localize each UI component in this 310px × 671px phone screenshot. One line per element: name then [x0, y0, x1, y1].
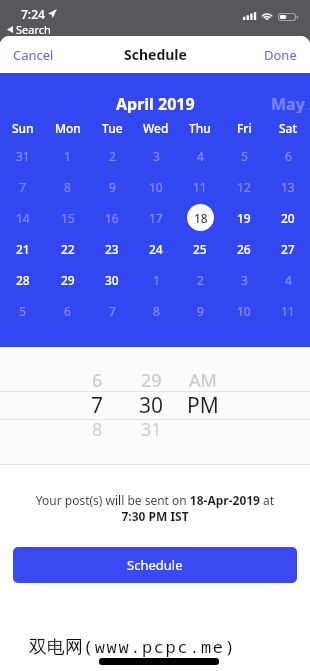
button[interactable]: 29 [124, 368, 178, 392]
staticText: 18 [194, 210, 208, 226]
staticText: 11 [281, 303, 295, 319]
button[interactable]: 31 [124, 417, 178, 441]
staticText: 25 [193, 241, 207, 257]
button[interactable]: 25 [178, 233, 222, 264]
button[interactable]: Cancel [0, 36, 66, 73]
staticText: 31 [141, 417, 162, 441]
button[interactable]: 7 [90, 295, 134, 326]
staticText: Mon [55, 120, 81, 136]
button[interactable]: AM [176, 368, 230, 392]
staticText: Tue [102, 120, 123, 136]
button[interactable]: 6 [266, 140, 310, 171]
button[interactable]: 13 [266, 171, 310, 202]
button[interactable]: Done [252, 36, 310, 73]
staticText: 8 [64, 179, 71, 195]
button[interactable]: 6 [70, 368, 124, 392]
staticText: 19 [237, 210, 251, 226]
button[interactable]: 12 [222, 171, 266, 202]
button[interactable]: 18 [178, 202, 222, 233]
staticText: 28 [16, 272, 30, 288]
staticText: 22 [61, 241, 75, 257]
button[interactable]: 7 [0, 171, 45, 202]
button[interactable]: 2 [178, 264, 222, 295]
button[interactable]: 10 [134, 171, 178, 202]
button[interactable]: 21 [0, 233, 45, 264]
button[interactable]: 30 [90, 264, 134, 295]
button[interactable]: 3 [222, 264, 266, 295]
button[interactable]: 5 [222, 140, 266, 171]
staticText: Your post(s) will be sent on 18-Apr-2019… [0, 492, 310, 524]
button[interactable] [176, 417, 230, 441]
button[interactable]: 9 [90, 171, 134, 202]
button[interactable]: 28 [0, 264, 45, 295]
staticText: 8 [153, 303, 160, 319]
button[interactable]: 1 [134, 264, 178, 295]
staticText: 30 [139, 391, 164, 415]
button[interactable]: 20 [266, 202, 310, 233]
button[interactable]: 26 [222, 233, 266, 264]
staticText: 23 [105, 241, 119, 257]
button[interactable]: 6 [45, 295, 90, 326]
staticText: 4 [285, 272, 292, 288]
staticText: 20 [281, 210, 295, 226]
staticText: 17 [149, 210, 163, 226]
button[interactable]: 4 [266, 264, 310, 295]
staticText: 5 [241, 148, 248, 164]
staticText: Fri [237, 120, 252, 136]
button[interactable]: 9 [178, 295, 222, 326]
button[interactable]: Schedule [13, 547, 297, 583]
button[interactable]: 1 [45, 140, 90, 171]
button[interactable]: 19 [222, 202, 266, 233]
staticText: Done [264, 46, 297, 64]
staticText: Schedule [127, 556, 183, 574]
staticText: 11 [193, 179, 207, 195]
button[interactable]: 30 [124, 391, 178, 415]
button[interactable]: 29 [45, 264, 90, 295]
staticText: 双电网 [29, 636, 83, 659]
staticText: 6 [285, 148, 292, 164]
button[interactable]: 8 [45, 171, 90, 202]
staticText: 8 [92, 417, 103, 441]
staticText: Search [16, 22, 51, 36]
button[interactable]: 27 [266, 233, 310, 264]
staticText: 27 [281, 241, 295, 257]
button[interactable]: 2 [90, 140, 134, 171]
button[interactable]: 8 [134, 295, 178, 326]
staticText: 7:24 [21, 6, 45, 22]
button[interactable]: 5 [0, 295, 45, 326]
staticText: 13 [281, 179, 295, 195]
button[interactable]: 3 [134, 140, 178, 171]
button[interactable]: 24 [134, 233, 178, 264]
staticText: 29 [141, 368, 162, 392]
button[interactable]: 31 [0, 140, 45, 171]
staticText: 12 [237, 179, 251, 195]
staticText: Sun [12, 120, 34, 136]
button[interactable]: 17 [134, 202, 178, 233]
button[interactable]: 14 [0, 202, 45, 233]
button[interactable]: 15 [45, 202, 90, 233]
staticText: 21 [16, 241, 30, 257]
staticText: Wed [143, 120, 169, 136]
staticText: 5 [19, 303, 26, 319]
staticText: Thu [189, 120, 211, 136]
button[interactable]: 22 [45, 233, 90, 264]
button[interactable]: 11 [178, 171, 222, 202]
staticText: 7 [19, 179, 26, 195]
staticText: 7 [109, 303, 116, 319]
button[interactable]: 8 [70, 417, 124, 441]
button[interactable]: 11 [266, 295, 310, 326]
staticText: 16 [105, 210, 119, 226]
staticText: Schedule [124, 45, 187, 64]
staticText: PM [187, 391, 219, 415]
button[interactable]: PM [176, 391, 230, 415]
staticText: 24 [149, 241, 163, 257]
staticText: 10 [237, 303, 251, 319]
button[interactable]: 10 [222, 295, 266, 326]
button[interactable]: 7 [70, 391, 124, 415]
button[interactable]: 23 [90, 233, 134, 264]
button[interactable]: 16 [90, 202, 134, 233]
staticText: 7 [91, 391, 104, 415]
staticText: 26 [237, 241, 251, 257]
staticText: 1 [153, 272, 160, 288]
button[interactable]: 4 [178, 140, 222, 171]
